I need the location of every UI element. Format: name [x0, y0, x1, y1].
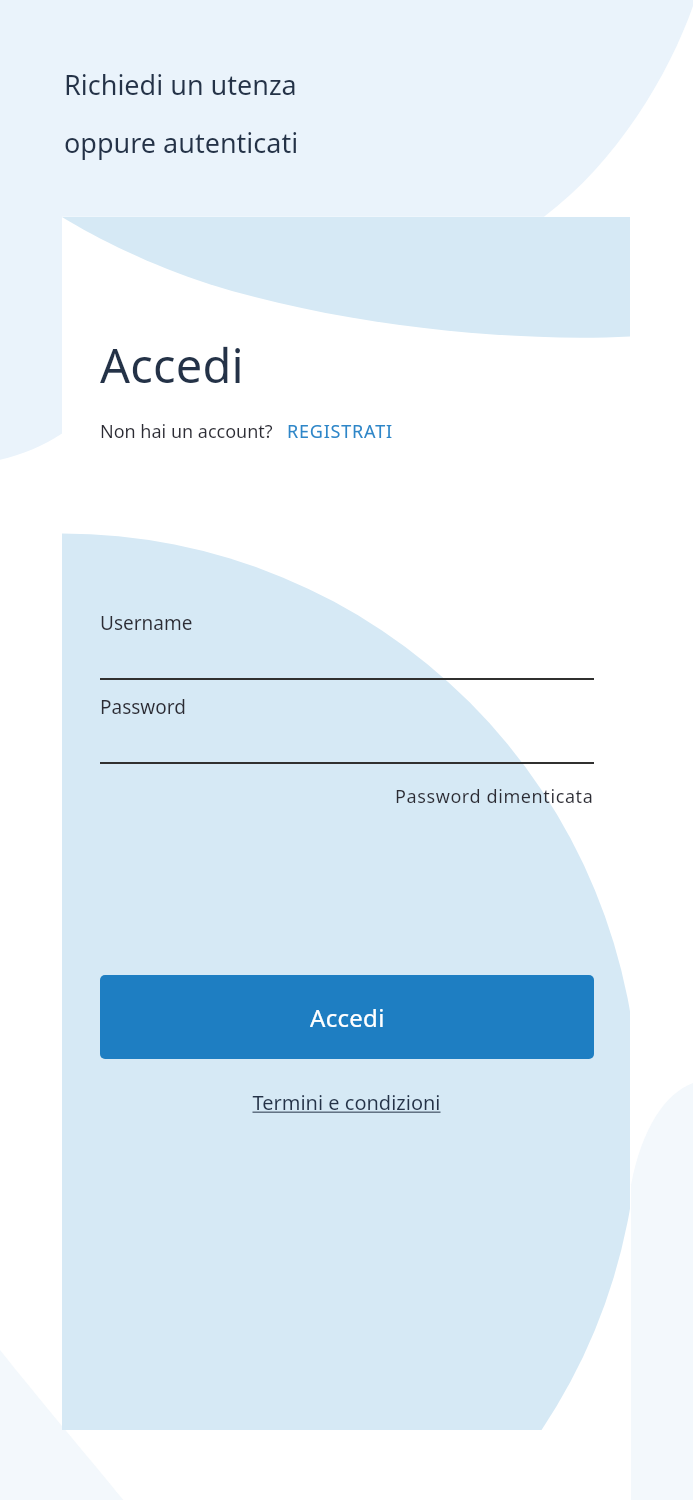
button[interactable]: Password	[100, 694, 594, 764]
button[interactable]: Accedi	[100, 975, 594, 1059]
staticText: Termini e condizioni	[252, 1089, 441, 1116]
button[interactable]: REGISTRATI	[287, 419, 393, 444]
button[interactable]: Username	[100, 610, 594, 680]
staticText: Accedi	[310, 1001, 385, 1034]
button[interactable]: Termini e condizioni	[252, 1089, 441, 1116]
staticText: REGISTRATI	[287, 419, 393, 444]
staticText: oppure autenticati	[64, 124, 299, 161]
staticText: Non hai un account?	[100, 419, 273, 444]
staticText: Username	[100, 610, 193, 636]
staticText: Password	[100, 694, 186, 720]
staticText: Accedi	[100, 333, 244, 397]
staticText: Password dimenticata	[395, 784, 594, 809]
staticText: Richiedi un utenza	[64, 66, 297, 103]
button[interactable]: Password dimenticata	[395, 784, 594, 809]
